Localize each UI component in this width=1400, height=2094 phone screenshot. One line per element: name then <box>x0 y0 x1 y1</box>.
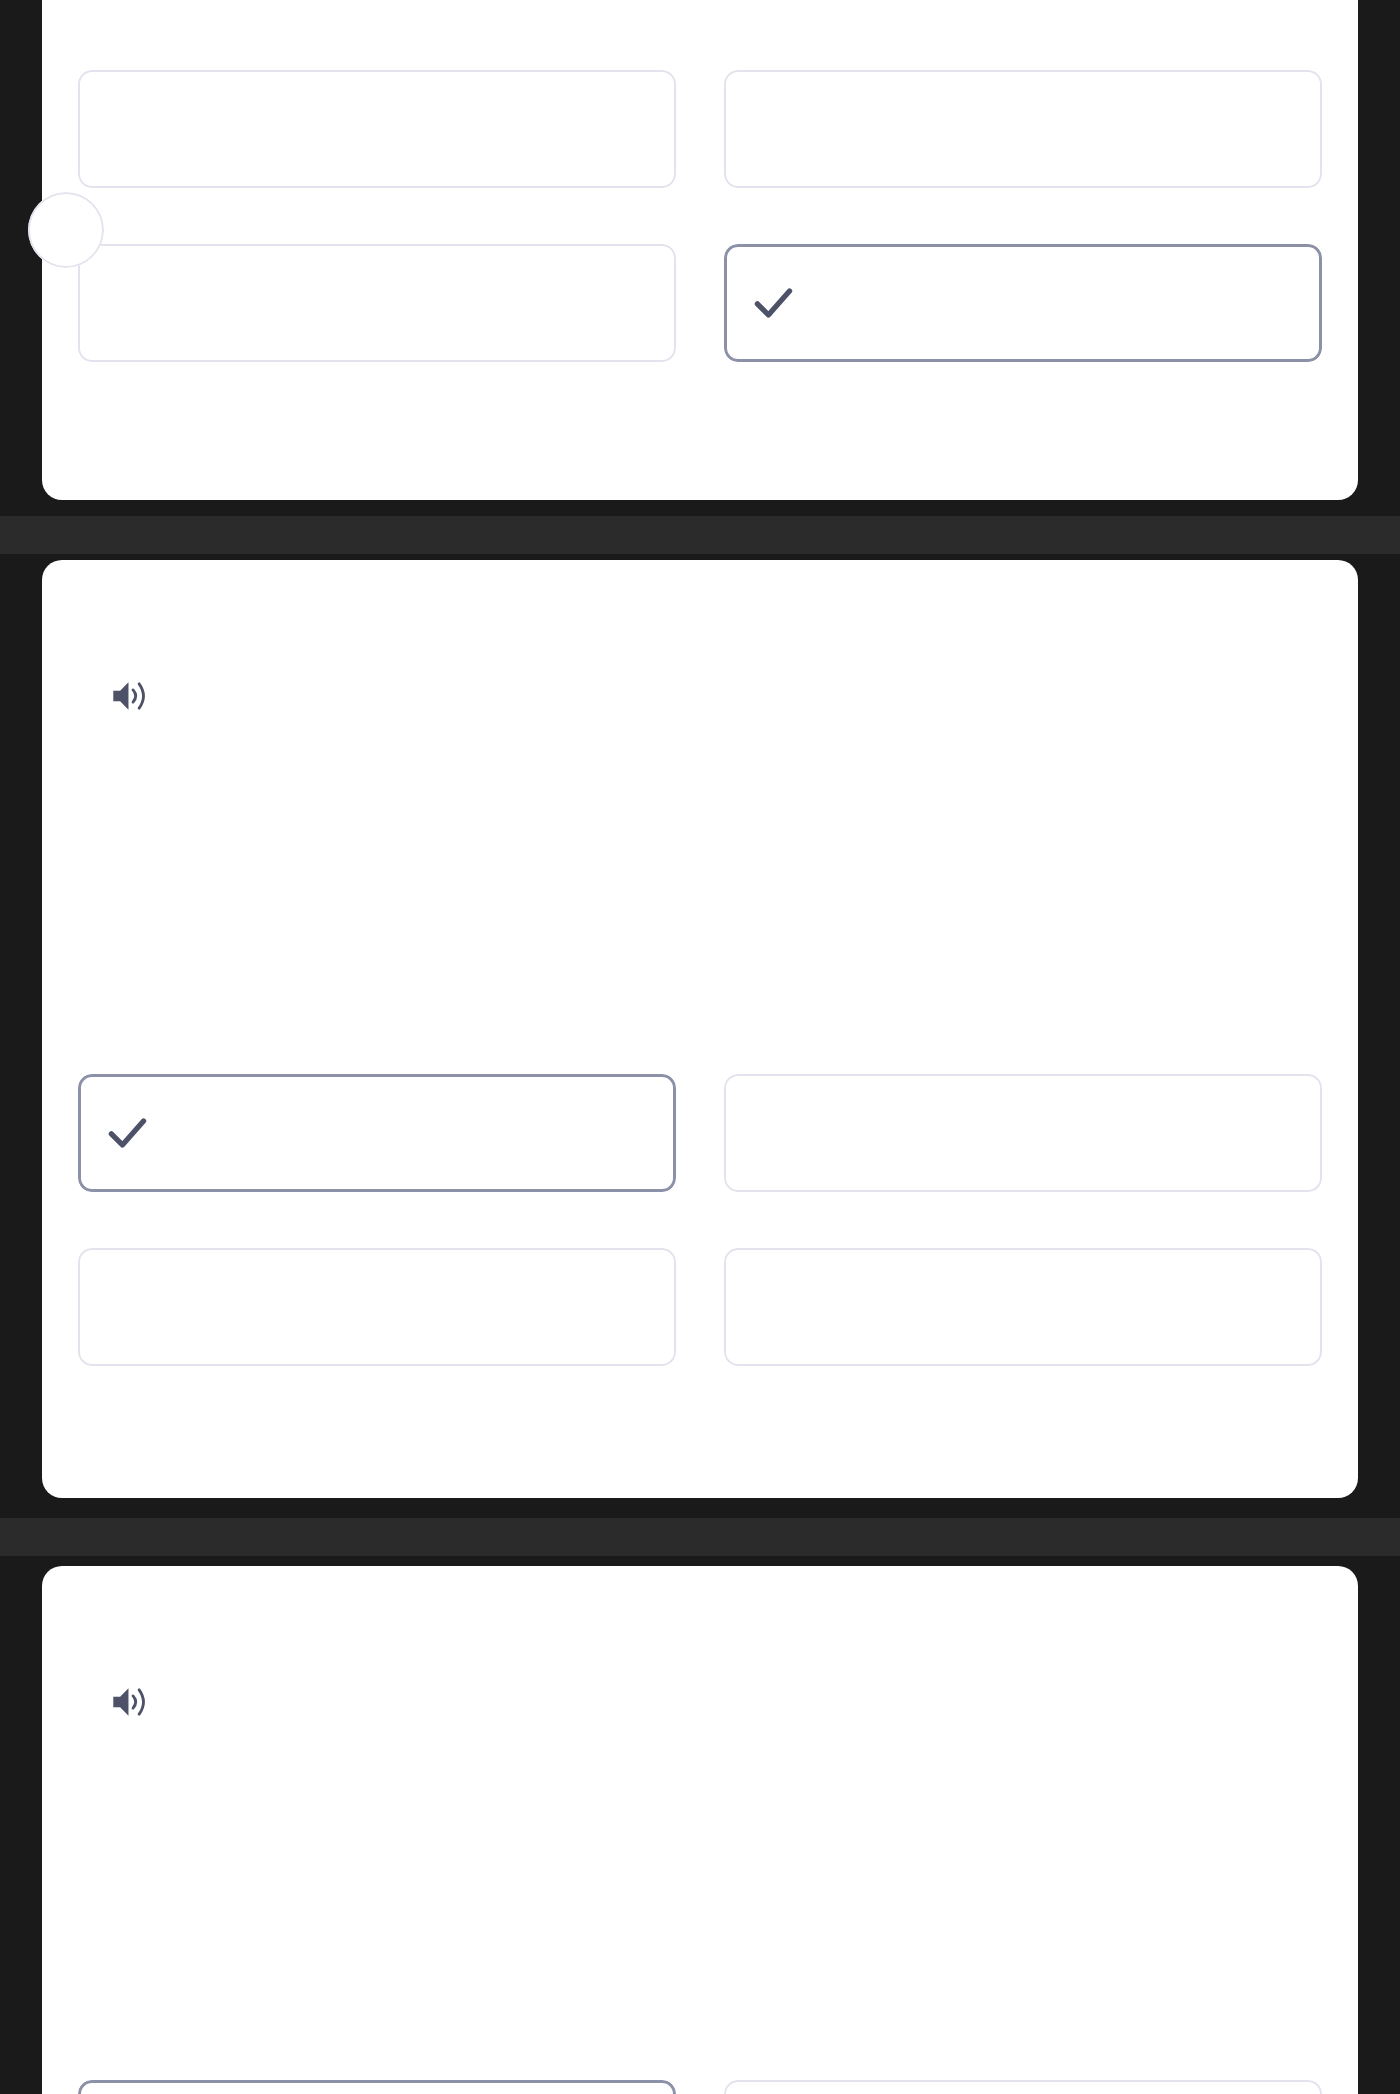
button[interactable] <box>78 244 676 362</box>
button[interactable] <box>78 1248 676 1366</box>
button[interactable] <box>724 1074 1322 1192</box>
other: Play audio <box>111 1683 149 1721</box>
button[interactable] <box>724 70 1322 188</box>
button[interactable] <box>724 244 1322 362</box>
button[interactable] <box>724 1248 1322 1366</box>
button[interactable] <box>78 1074 676 1192</box>
button[interactable] <box>78 2080 676 2094</box>
button[interactable] <box>78 70 676 188</box>
other: Play audio <box>111 677 149 715</box>
button[interactable]: Avatar <box>28 192 104 268</box>
button[interactable]: Play audio <box>102 1674 158 1730</box>
button[interactable] <box>724 2080 1322 2094</box>
button[interactable]: Play audio <box>102 668 158 724</box>
